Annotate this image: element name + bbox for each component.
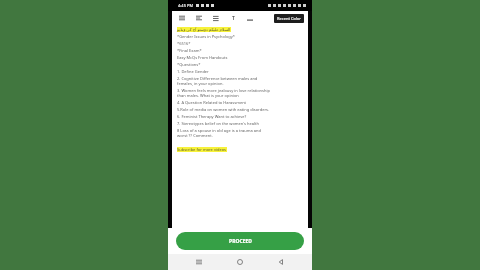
button[interactable]: Recents (189, 254, 209, 270)
staticText: than males. What is your opinion (177, 93, 239, 98)
button[interactable]: Indent (210, 13, 222, 23)
staticText: females, in your opinion. (177, 81, 224, 86)
button[interactable]: Home (230, 254, 250, 270)
staticText: 3. Women feels more jealousy in love rel… (177, 88, 270, 93)
button[interactable]: Back (271, 254, 291, 270)
staticText: *6516* (177, 41, 191, 46)
staticText: Subscribe for more videos (177, 147, 227, 152)
button[interactable]: Align (193, 13, 205, 23)
staticText: 5.Role of media on women with eating dis… (177, 107, 270, 112)
staticText: 4:45 PM (178, 3, 194, 8)
staticText: 1. Define Gender (177, 69, 209, 74)
staticText: Easy McQs From Handouts (177, 55, 228, 60)
staticText: Recent Color (277, 16, 301, 21)
staticText: T (232, 15, 235, 22)
staticText: 7. Stereotypes belief on the women's hea… (177, 121, 259, 126)
staticText: PROCEED (229, 238, 252, 245)
button[interactable]: PROCEED (176, 232, 304, 250)
staticText: 4. A Question Related to Harassment (177, 100, 247, 105)
staticText: *Questions* (177, 62, 201, 67)
staticText: worst ?? Comment. (177, 133, 213, 138)
button[interactable]: Bullet list (176, 13, 188, 23)
staticText: 2. Cognitive Difference between males an… (177, 76, 258, 81)
staticText: *Gender Issues in Psychology* (177, 34, 236, 39)
staticText: 8 Loss of a spouse in old age is a traum… (177, 128, 262, 133)
staticText: *Final Exam* (177, 48, 202, 53)
staticText: السلام علیکم دوستو آج کی ویڈیو (177, 27, 231, 32)
button[interactable]: Text color (244, 13, 256, 23)
button[interactable]: Text size (227, 13, 239, 23)
staticText: 6. Feminist Therapy Want to achieve? (177, 114, 247, 119)
